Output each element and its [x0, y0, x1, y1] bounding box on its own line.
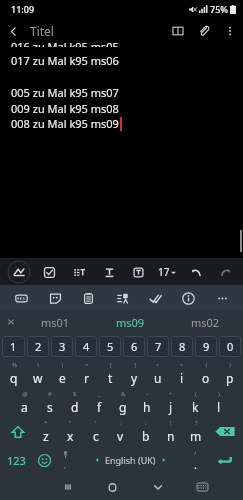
staticText: ?: [195, 419, 198, 427]
button[interactable]: +: [159, 388, 183, 417]
button[interactable]: Backspace: [208, 417, 242, 446]
staticText: k: [192, 399, 199, 415]
staticText: 7: [155, 339, 162, 354]
button[interactable]: 3: [51, 336, 73, 357]
staticText: @: [22, 390, 28, 398]
button[interactable]: \: [26, 359, 50, 388]
staticText: h: [143, 399, 151, 415]
button[interactable]: Translate: [110, 286, 134, 310]
button[interactable]: Paragraph style: [67, 260, 91, 284]
staticText: t: [108, 370, 113, 386]
button[interactable]: 8: [171, 336, 193, 357]
button[interactable]: GIF: [9, 286, 33, 310]
button[interactable]: Change keyboard: [180, 474, 225, 500]
button[interactable]: =: [74, 359, 98, 388]
staticText: 0: [227, 339, 234, 354]
button[interactable]: >: [170, 359, 194, 388]
staticText: .: [194, 457, 197, 472]
staticText: /: [194, 449, 197, 457]
button[interactable]: 016 zu Mal k95 ms05: [0, 44, 243, 258]
button[interactable]: _: [87, 388, 111, 417]
staticText: z: [43, 428, 49, 444]
button[interactable]: 123: [1, 446, 32, 474]
button[interactable]: #: [37, 388, 62, 417]
button[interactable]: Expand toolbar: [0, 311, 22, 333]
button[interactable]: ms02: [168, 310, 243, 334]
staticText: _: [98, 390, 101, 398]
button[interactable]: 1: [2, 336, 25, 357]
button[interactable]: Clipboard: [76, 286, 100, 310]
button[interactable]: Enter: [206, 446, 242, 474]
staticText: {: [205, 361, 208, 369]
button[interactable]: Back: [0, 18, 26, 44]
staticText: ": [69, 419, 72, 427]
staticText: 6: [131, 339, 138, 354]
button[interactable]: English (UK): [75, 446, 185, 474]
staticText: \: [37, 361, 40, 369]
button[interactable]: Attach: [191, 18, 217, 44]
button[interactable]: ": [58, 417, 83, 446]
staticText: 016 zu Mal k95 ms05: [11, 39, 119, 47]
button[interactable]: Shift: [1, 417, 34, 446]
button[interactable]: -: [135, 388, 159, 417]
button[interactable]: 0: [219, 336, 241, 357]
button[interactable]: Checklist: [37, 260, 61, 284]
button[interactable]: $: [62, 388, 87, 417]
button[interactable]: (: [183, 388, 207, 417]
staticText: 9: [203, 339, 210, 354]
button[interactable]: ms09: [93, 310, 168, 334]
button[interactable]: More options: [217, 18, 243, 44]
button[interactable]: {: [194, 359, 218, 388]
button[interactable]: 17: [156, 265, 178, 279]
staticText: ,: [64, 459, 67, 470]
button[interactable]: :: [108, 417, 133, 446]
button[interactable]: More: [210, 286, 234, 310]
staticText: s: [47, 399, 53, 415]
button[interactable]: ]: [122, 359, 146, 388]
button[interactable]: 2: [27, 336, 49, 357]
button[interactable]: !: [158, 417, 183, 446]
staticText: :: [120, 419, 122, 427]
button[interactable]: ?: [183, 417, 208, 446]
button[interactable]: %: [1, 359, 26, 388]
button[interactable]: @: [12, 388, 37, 417]
button[interactable]: Hide keyboard: [135, 474, 180, 500]
staticText: r: [84, 370, 89, 386]
button[interactable]: <: [146, 359, 170, 388]
button[interactable]: 7: [147, 336, 169, 357]
staticText: ms02: [191, 315, 220, 330]
button[interactable]: Emoji: [32, 446, 56, 474]
button[interactable]: Info: [176, 286, 200, 310]
button[interactable]: ;: [133, 417, 158, 446]
button[interactable]: 9: [195, 336, 217, 357]
staticText: >: [180, 361, 184, 369]
button[interactable]: Redo: [213, 260, 237, 284]
staticText: *: [44, 419, 48, 427]
button[interactable]: Recents: [45, 474, 90, 500]
button[interactable]: ): [207, 388, 231, 417]
button[interactable]: Undo: [184, 260, 208, 284]
button[interactable]: Text box: [126, 260, 150, 284]
button[interactable]: Home: [90, 474, 135, 500]
button[interactable]: 5: [99, 336, 121, 357]
button[interactable]: Period: [185, 446, 206, 474]
button[interactable]: Reading mode: [165, 18, 191, 44]
button[interactable]: Drawing: [6, 259, 32, 285]
button[interactable]: [: [98, 359, 122, 388]
staticText: <: [156, 361, 160, 369]
button[interactable]: Spell check: [143, 286, 167, 310]
staticText: $: [73, 390, 77, 398]
staticText: 1: [10, 339, 17, 354]
button[interactable]: Text format: [97, 260, 121, 284]
button[interactable]: &: [111, 388, 135, 417]
button[interactable]: |: [50, 359, 74, 388]
button[interactable]: 6: [123, 336, 145, 357]
button[interactable]: ms01: [18, 310, 93, 334]
button[interactable]: Voice input: [56, 446, 75, 474]
button[interactable]: Stickers: [43, 286, 67, 310]
button[interactable]: 4: [75, 336, 97, 357]
button[interactable]: }: [218, 359, 242, 388]
button[interactable]: ': [83, 417, 108, 446]
staticText: ): [218, 390, 220, 398]
button[interactable]: *: [34, 417, 58, 446]
